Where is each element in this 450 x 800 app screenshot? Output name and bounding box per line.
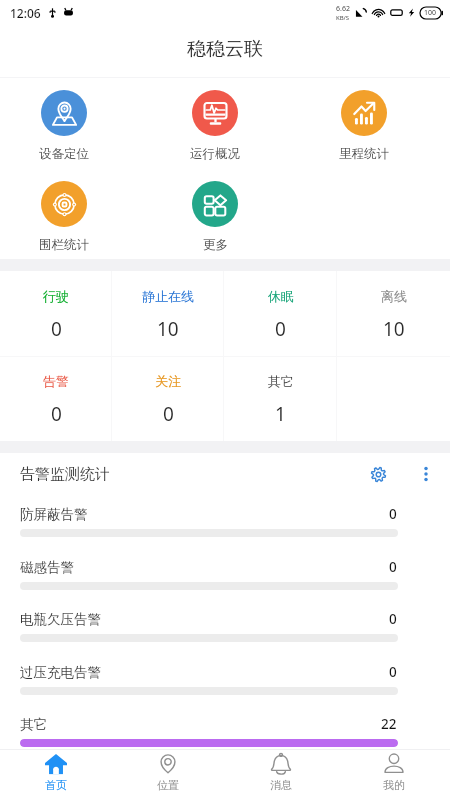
staticText: 围栏统计 <box>39 237 89 253</box>
button[interactable]: 设备定位 <box>14 90 114 162</box>
button[interactable]: 我的 <box>337 750 450 800</box>
staticText: 关注 <box>155 373 181 389</box>
staticText: 过压充电告警 <box>20 664 101 681</box>
button[interactable]: 围栏统计 <box>14 181 114 253</box>
staticText: 0 <box>275 316 286 342</box>
staticText: 磁感告警 <box>20 559 74 576</box>
staticText: 0 <box>389 610 397 628</box>
button[interactable]: 更多 <box>165 181 265 253</box>
staticText: 更多 <box>203 237 228 253</box>
button[interactable]: 静止在线 <box>112 271 224 356</box>
button[interactable]: 告警 <box>0 357 112 441</box>
staticText: 1 <box>275 401 286 427</box>
button[interactable]: 位置 <box>112 750 224 800</box>
staticText: 22 <box>381 715 397 733</box>
staticText: 10 <box>157 316 179 342</box>
button[interactable]: 首页 <box>0 750 112 800</box>
staticText: 告警监测统计 <box>20 465 110 484</box>
staticText: 运行概况 <box>190 146 240 162</box>
staticText: 0 <box>51 401 62 427</box>
button[interactable]: 里程统计 <box>314 90 414 162</box>
staticText: 其它 <box>268 373 294 389</box>
staticText: 静止在线 <box>142 288 194 304</box>
button[interactable]: 过压充电告警 <box>0 655 450 695</box>
staticText: 里程统计 <box>339 146 389 162</box>
staticText: 12:06 <box>10 5 41 21</box>
button[interactable]: 离线 <box>337 271 450 356</box>
button[interactable]: 行驶 <box>0 271 112 356</box>
button[interactable]: 防屏蔽告警 <box>0 497 450 537</box>
button[interactable]: 其它 <box>224 357 337 441</box>
staticText: 0 <box>389 558 397 576</box>
button[interactable]: Settings <box>362 458 394 490</box>
staticText: 设备定位 <box>39 146 89 162</box>
button[interactable]: 消息 <box>224 750 337 800</box>
staticText: 电瓶欠压告警 <box>20 611 101 628</box>
staticText: 告警 <box>43 373 69 389</box>
button[interactable]: 磁感告警 <box>0 550 450 590</box>
staticText: 离线 <box>381 288 407 304</box>
staticText: 稳稳云联 <box>187 37 263 61</box>
button[interactable]: 关注 <box>112 357 224 441</box>
staticText: 消息 <box>270 778 292 792</box>
staticText: KB/S <box>336 14 350 22</box>
staticText: 0 <box>51 316 62 342</box>
button[interactable]: 电瓶欠压告警 <box>0 602 450 642</box>
staticText: 0 <box>389 505 397 523</box>
staticText: 0 <box>163 401 174 427</box>
staticText: 6.62 <box>336 4 350 14</box>
staticText: 0 <box>389 663 397 681</box>
staticText: 100 <box>424 8 437 18</box>
button[interactable]: More options <box>413 461 439 487</box>
staticText: 我的 <box>383 778 405 792</box>
button[interactable]: 休眠 <box>224 271 337 356</box>
staticText: 位置 <box>157 778 179 792</box>
staticText: 首页 <box>45 778 67 792</box>
staticText: 防屏蔽告警 <box>20 506 88 523</box>
staticText: 其它 <box>20 716 47 733</box>
staticText: 休眠 <box>268 288 294 304</box>
button[interactable]: 运行概况 <box>165 90 265 162</box>
staticText: 10 <box>383 316 405 342</box>
staticText: 行驶 <box>43 288 69 304</box>
button[interactable]: 其它 <box>0 707 450 747</box>
